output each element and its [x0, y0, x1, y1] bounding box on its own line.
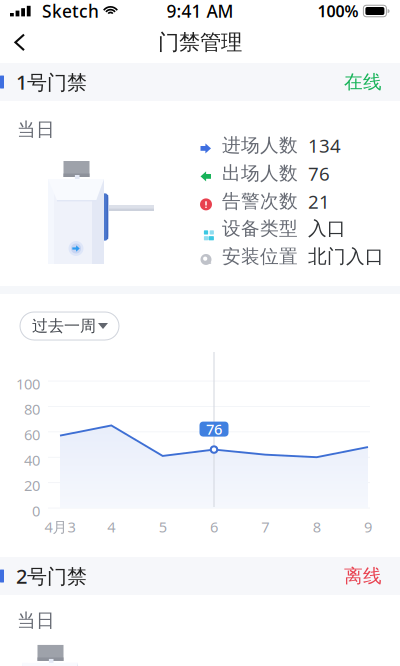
staticText: 80 [24, 399, 40, 419]
staticText: 9 [364, 517, 372, 536]
staticText: 1号门禁 [16, 69, 87, 95]
staticText: 进场人数 [222, 134, 298, 157]
staticText: 设备类型 [222, 217, 298, 240]
staticText: 5 [159, 517, 167, 536]
staticText: 6 [210, 517, 218, 536]
staticText: 门禁管理 [158, 29, 242, 56]
staticText: 4 [107, 517, 115, 536]
staticText: 2号门禁 [16, 563, 87, 589]
staticText: 告警次数 [222, 190, 298, 213]
staticText: 20 [24, 476, 40, 495]
staticText: 100 [16, 374, 40, 393]
staticText: 入口 [308, 217, 346, 240]
staticText: 7 [261, 517, 269, 536]
staticText: 当日 [17, 118, 55, 141]
button[interactable]: 过去一周 [20, 312, 119, 340]
staticText: 100% [317, 0, 358, 22]
staticText: 当日 [17, 609, 55, 632]
staticText: 60 [24, 425, 40, 444]
button[interactable]: Back [0, 22, 43, 63]
staticText: 过去一周 [32, 316, 96, 336]
staticText: 离线 [344, 564, 382, 587]
staticText: 0 [32, 501, 40, 520]
staticText: 北门入口 [308, 245, 384, 268]
staticText: 40 [24, 450, 40, 470]
staticText: Sketch [42, 0, 99, 22]
staticText: 134 [308, 133, 341, 158]
staticText: 8 [313, 517, 321, 536]
staticText: 安装位置 [222, 245, 298, 268]
staticText: 76 [206, 419, 222, 439]
staticText: 出场人数 [222, 162, 298, 185]
staticText: 4月3 [44, 517, 75, 536]
staticText: 76 [308, 161, 330, 186]
staticText: 21 [308, 189, 330, 214]
staticText: 在线 [344, 70, 382, 93]
staticText: 9:41 AM [166, 0, 233, 22]
